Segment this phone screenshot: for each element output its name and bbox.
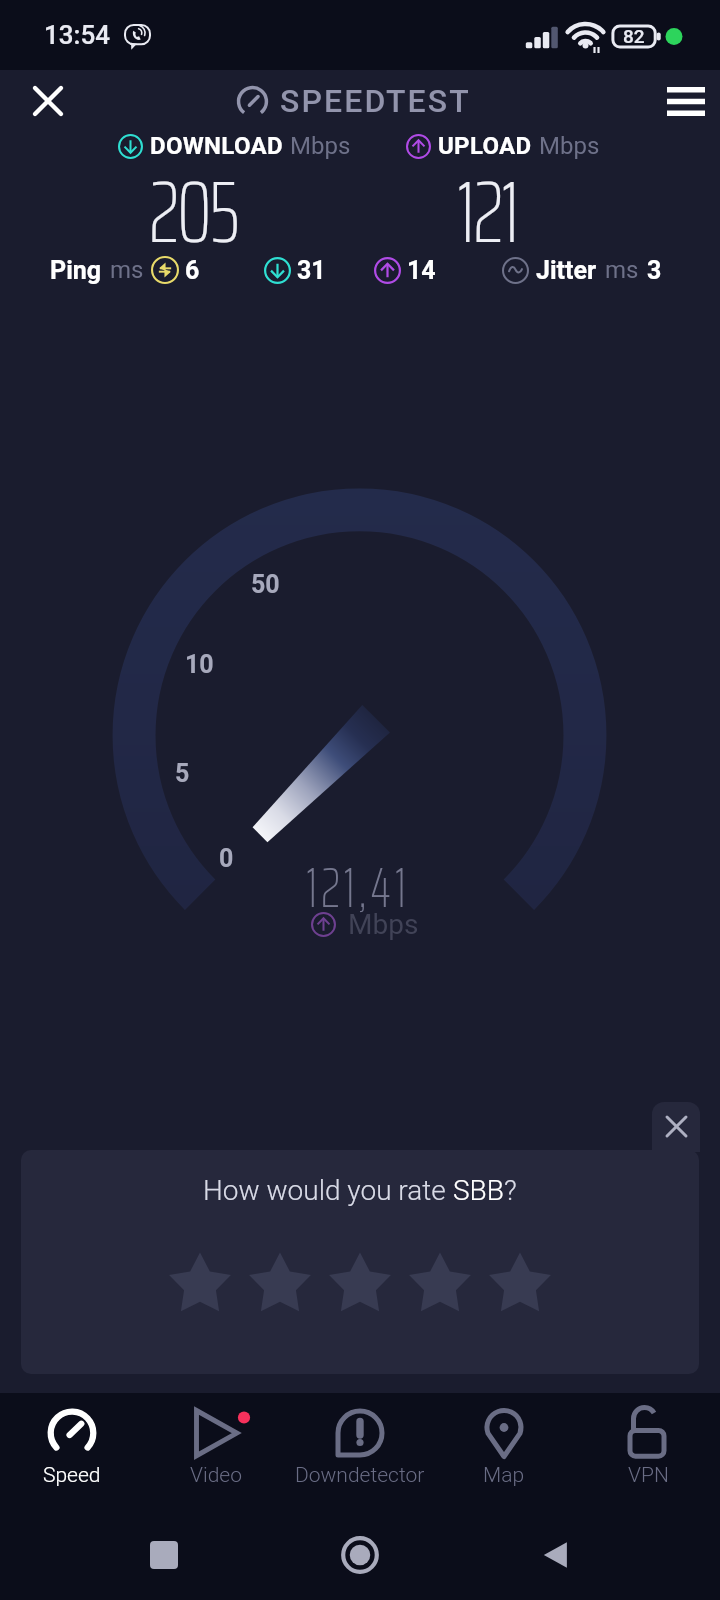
button[interactable]: Downdetector bbox=[288, 1393, 432, 1510]
staticText: ms bbox=[605, 256, 639, 284]
staticText: Video bbox=[190, 1463, 242, 1488]
button[interactable]: Speed bbox=[0, 1393, 144, 1510]
staticText: ? bbox=[504, 1174, 517, 1207]
staticText: 14 bbox=[407, 256, 436, 285]
button[interactable]: Rate 2 stars bbox=[240, 1250, 320, 1320]
button[interactable]: Map bbox=[432, 1393, 576, 1510]
button[interactable]: Rate 4 stars bbox=[400, 1250, 480, 1320]
button[interactable]: Recent apps bbox=[132, 1523, 196, 1587]
staticText: ms bbox=[110, 256, 144, 284]
staticText: 5 bbox=[175, 759, 190, 788]
button[interactable]: Home bbox=[328, 1523, 392, 1587]
staticText: Speed bbox=[43, 1463, 101, 1488]
staticText: Mbps bbox=[348, 908, 419, 940]
staticText: 31 bbox=[297, 256, 326, 285]
staticText: 82 bbox=[623, 25, 645, 47]
staticText: Mbps bbox=[539, 132, 600, 160]
button[interactable]: Dismiss bbox=[652, 1102, 700, 1152]
button[interactable]: Rate 1 stars bbox=[160, 1250, 240, 1320]
staticText: DOWNLOAD bbox=[150, 132, 283, 160]
button[interactable]: Video bbox=[144, 1393, 288, 1510]
button[interactable]: Close bbox=[14, 70, 82, 132]
staticText: 6 bbox=[185, 256, 200, 285]
staticText: 121,41 bbox=[306, 845, 410, 925]
staticText: 50 bbox=[251, 570, 280, 599]
button[interactable]: Rate 5 stars bbox=[480, 1250, 560, 1320]
button[interactable]: Menu bbox=[652, 70, 720, 132]
button[interactable]: Back bbox=[524, 1523, 588, 1587]
staticText: Map bbox=[483, 1463, 525, 1488]
staticText: VPN bbox=[628, 1463, 669, 1488]
staticText: SBB bbox=[453, 1174, 504, 1207]
button[interactable]: How would you rate bbox=[21, 1150, 699, 1374]
staticText: 3 bbox=[647, 256, 662, 285]
staticText: 0 bbox=[219, 844, 234, 873]
button[interactable]: VPN bbox=[576, 1393, 720, 1510]
staticText: Downdetector bbox=[295, 1463, 425, 1488]
staticText: SPEEDTEST bbox=[280, 82, 471, 120]
staticText: 205 bbox=[149, 143, 238, 263]
staticText: UPLOAD bbox=[438, 132, 532, 160]
staticText: Ping bbox=[50, 256, 102, 285]
staticText: 10 bbox=[185, 650, 214, 679]
staticText: How would you rate bbox=[203, 1174, 453, 1207]
button[interactable]: Rate 3 stars bbox=[320, 1250, 400, 1320]
staticText: Mbps bbox=[290, 132, 351, 160]
staticText: 121 bbox=[457, 143, 518, 263]
staticText: Jitter bbox=[536, 256, 597, 285]
staticText: 13:54 bbox=[44, 20, 111, 50]
